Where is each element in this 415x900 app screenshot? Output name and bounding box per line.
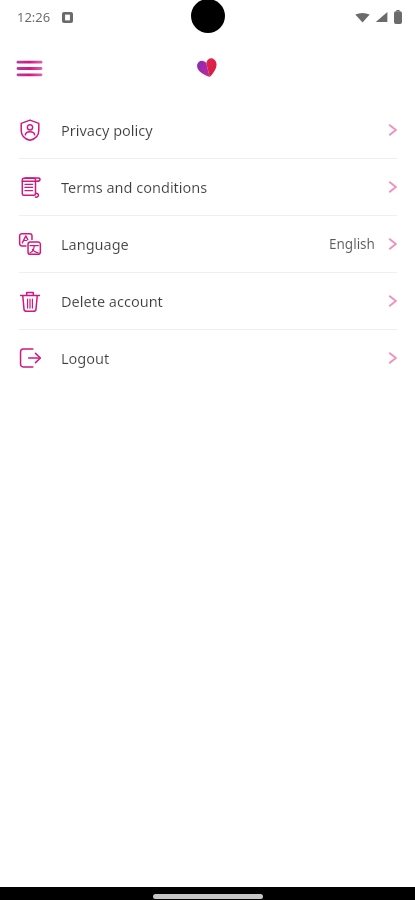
staticText: English xyxy=(329,235,375,253)
button[interactable]: Delete account xyxy=(0,273,415,329)
button[interactable]: Privacy policy xyxy=(0,102,415,158)
staticText: Language xyxy=(61,234,129,254)
button[interactable]: Logout xyxy=(0,330,415,386)
button[interactable]: Terms and conditions xyxy=(0,159,415,215)
staticText: Privacy policy xyxy=(61,120,153,140)
staticText: Delete account xyxy=(61,291,163,311)
button[interactable]: Language xyxy=(0,216,415,272)
staticText: Terms and conditions xyxy=(61,177,208,197)
staticText: Logout xyxy=(61,348,110,368)
staticText: 12:26 xyxy=(17,8,51,26)
button[interactable]: Open navigation menu xyxy=(7,46,51,90)
